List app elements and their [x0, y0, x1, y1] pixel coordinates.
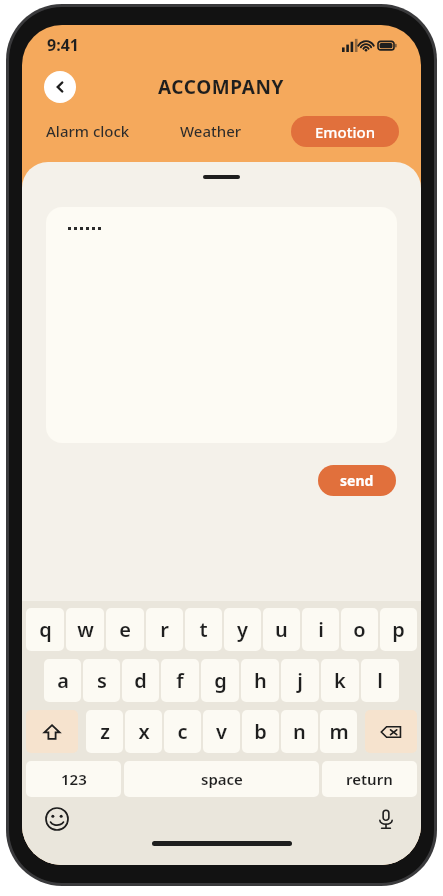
button[interactable]: p: [380, 608, 417, 651]
staticText: ACCOMPANY: [158, 74, 285, 100]
button[interactable]: Backspace: [365, 710, 417, 753]
staticText: m: [329, 718, 349, 745]
button[interactable]: u: [263, 608, 300, 651]
button[interactable]: Back: [44, 71, 76, 103]
button[interactable]: g: [201, 659, 239, 702]
staticText: x: [138, 718, 150, 745]
button[interactable]: l: [361, 659, 399, 702]
button[interactable]: return: [322, 761, 417, 797]
button[interactable]: f: [161, 659, 199, 702]
button[interactable]: a: [44, 659, 81, 702]
button[interactable]: Weather: [176, 117, 246, 145]
staticText: space: [201, 769, 243, 789]
button[interactable]: z: [86, 710, 123, 753]
button[interactable]: r: [146, 608, 183, 651]
button[interactable]: s: [83, 659, 120, 702]
button[interactable]: Voice input: [369, 802, 403, 836]
staticText: Alarm clock: [46, 121, 130, 141]
staticText: q: [39, 616, 52, 643]
button[interactable]: 123: [26, 761, 121, 797]
staticText: p: [392, 616, 405, 643]
staticText: y: [237, 616, 248, 643]
button[interactable]: w: [66, 608, 104, 651]
button[interactable]: y: [224, 608, 261, 651]
staticText: j: [297, 667, 303, 694]
staticText: t: [199, 616, 208, 643]
staticText: 123: [61, 769, 87, 789]
button[interactable]: i: [302, 608, 339, 651]
staticText: v: [216, 718, 227, 745]
button[interactable]: c: [164, 710, 201, 753]
staticText: Weather: [180, 121, 242, 141]
button[interactable]: v: [203, 710, 240, 753]
button[interactable]: o: [341, 608, 378, 651]
staticText: h: [254, 667, 267, 694]
staticText: Emotion: [315, 122, 376, 142]
staticText: a: [57, 667, 69, 694]
button[interactable]: t: [185, 608, 222, 651]
button[interactable]: q: [26, 608, 64, 651]
button[interactable]: k: [321, 659, 359, 702]
button[interactable]: d: [122, 659, 159, 702]
staticText: return: [346, 769, 393, 789]
button[interactable]: x: [125, 710, 162, 753]
staticText: b: [254, 718, 267, 745]
staticText: send: [340, 471, 374, 490]
staticText: o: [353, 616, 366, 643]
button[interactable]: send: [318, 465, 396, 496]
staticText: u: [275, 616, 288, 643]
staticText: i: [318, 616, 324, 643]
staticText: k: [334, 667, 346, 694]
staticText: r: [160, 616, 169, 643]
staticText: c: [177, 718, 188, 745]
button[interactable]: b: [242, 710, 279, 753]
staticText: e: [119, 616, 131, 643]
staticText: s: [97, 667, 107, 694]
staticText: g: [214, 667, 227, 694]
staticText: z: [100, 718, 110, 745]
button[interactable]: j: [281, 659, 319, 702]
button[interactable]: e: [106, 608, 144, 651]
staticText: n: [293, 718, 306, 745]
button[interactable]: Emotion: [291, 116, 399, 147]
button[interactable]: space: [124, 761, 319, 797]
staticText: 9:41: [47, 34, 79, 56]
staticText: w: [77, 616, 94, 643]
button[interactable]: n: [281, 710, 318, 753]
button[interactable]: Alarm clock: [42, 117, 134, 145]
staticText: f: [176, 667, 184, 694]
button[interactable]: Emoji: [40, 802, 74, 836]
button[interactable]: [46, 207, 397, 443]
button[interactable]: Shift: [26, 710, 78, 753]
button[interactable]: h: [241, 659, 279, 702]
staticText: l: [377, 667, 383, 694]
button[interactable]: m: [320, 710, 357, 753]
staticText: d: [134, 667, 147, 694]
